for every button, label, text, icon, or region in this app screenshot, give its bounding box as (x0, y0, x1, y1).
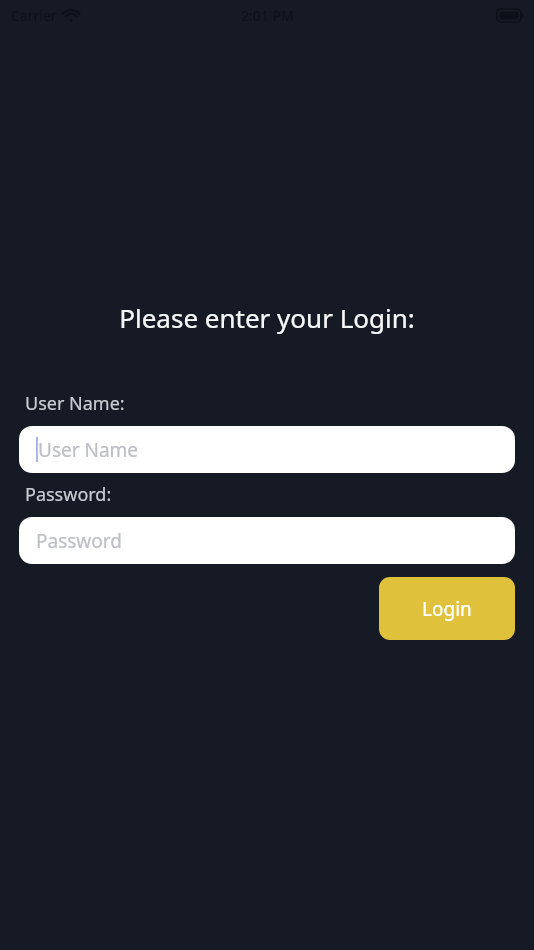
staticText: 2:01 PM (241, 6, 294, 25)
staticText: Please enter your Login: (0, 300, 534, 335)
staticText: Carrier (11, 6, 57, 25)
button[interactable]: Password (19, 517, 515, 564)
staticText: User Name (38, 437, 139, 463)
staticText: User Name: (25, 391, 125, 416)
staticText: Password: (25, 482, 112, 507)
button[interactable]: User Name (19, 426, 515, 473)
button[interactable]: Login (379, 577, 515, 640)
staticText: Password (36, 528, 122, 554)
staticText: Login (422, 596, 472, 622)
